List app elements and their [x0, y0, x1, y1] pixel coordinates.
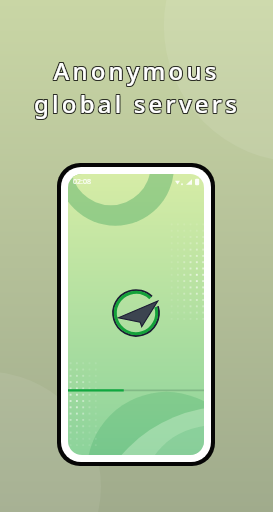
staticText: global servers — [35, 88, 241, 121]
staticText: Anonymous — [52, 54, 219, 87]
staticText: global servers — [35, 86, 241, 119]
staticText: Anonymous — [54, 55, 221, 88]
staticText: Anonymous — [53, 54, 220, 87]
staticText: Anonymous — [54, 53, 221, 86]
staticText: Anonymous — [53, 55, 220, 88]
staticText: global servers — [35, 87, 241, 120]
staticText: Anonymous — [53, 53, 220, 86]
staticText: Anonymous — [54, 54, 221, 87]
staticText: global servers — [34, 88, 240, 121]
staticText: global servers — [33, 88, 239, 121]
staticText: 02:08 — [73, 177, 91, 187]
staticText: global servers — [34, 86, 240, 119]
staticText: global servers — [33, 86, 239, 119]
staticText: Anonymous — [52, 53, 219, 86]
staticText: global servers — [34, 87, 240, 120]
staticText: global servers — [33, 87, 239, 120]
staticText: Anonymous — [52, 55, 219, 88]
